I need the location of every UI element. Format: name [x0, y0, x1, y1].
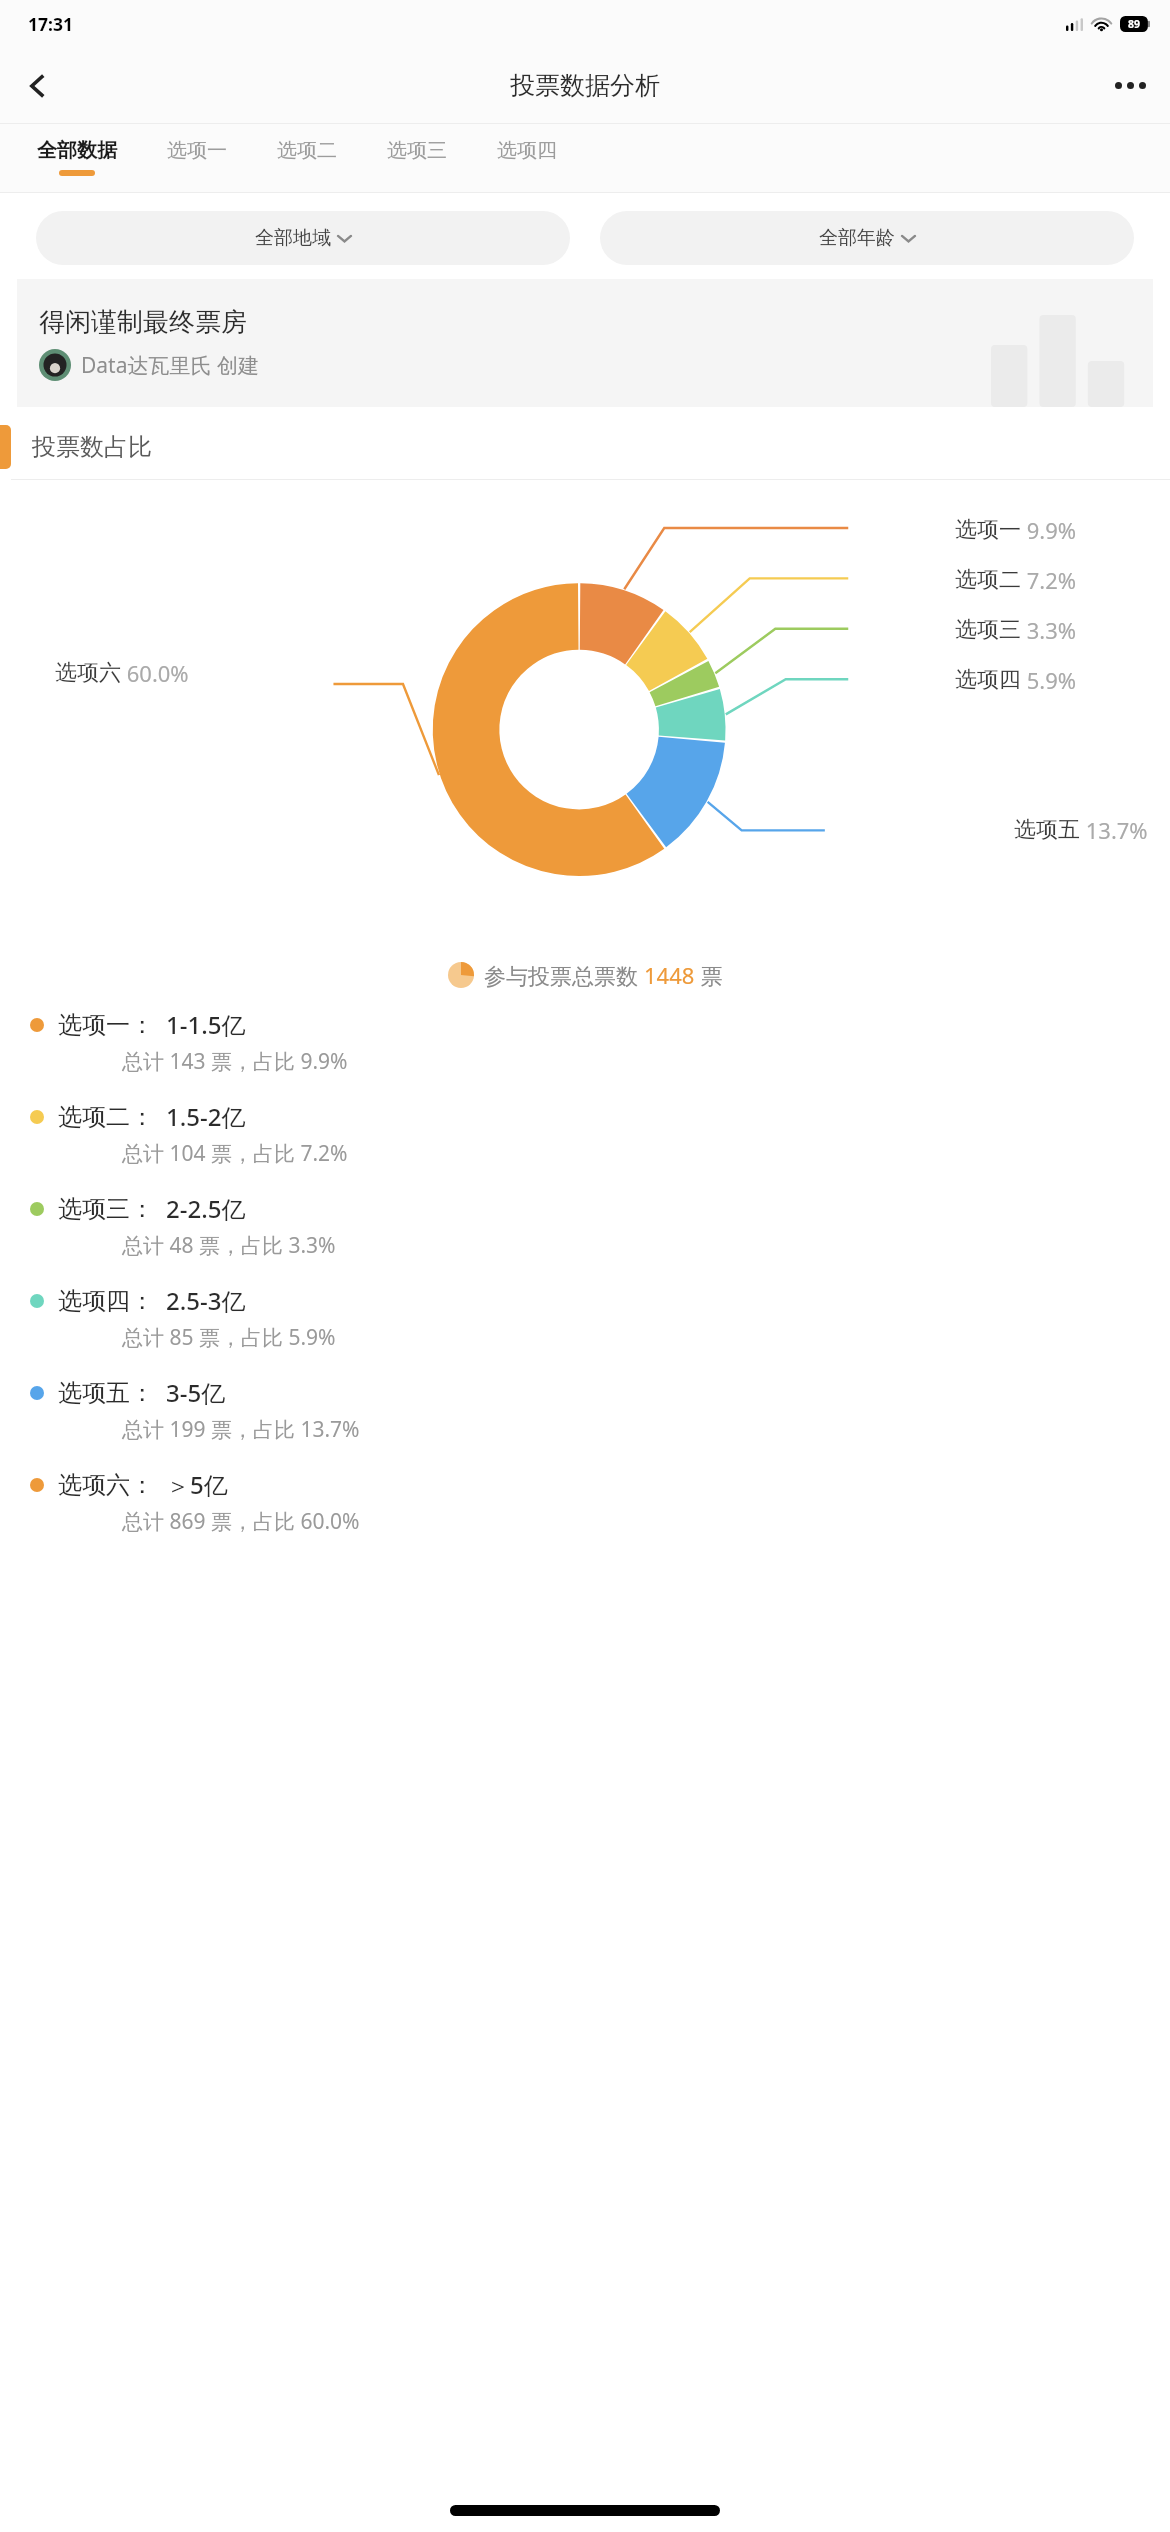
staticText: 投票数据分析 — [510, 70, 660, 101]
staticText: 选项三 — [387, 138, 447, 163]
staticText: 得闲谨制最终票房 — [39, 306, 247, 339]
staticText: 参与投票总票数 — [484, 960, 644, 990]
staticText: 总计 869 票，占比 60.0% — [122, 1507, 360, 1536]
staticText: 票 — [695, 960, 723, 990]
staticText: 1.5-2亿 — [166, 1100, 246, 1133]
staticText: ＞5亿 — [166, 1468, 228, 1501]
staticText: 选项一 — [167, 138, 227, 163]
staticText: 1448 — [644, 960, 695, 990]
button[interactable]: 选项三： — [0, 1192, 1170, 1260]
staticText: 选项一： — [58, 1010, 154, 1040]
button[interactable]: 选项四： — [0, 1284, 1170, 1352]
staticText: 选项二 — [955, 566, 1021, 594]
staticText: 总计 48 票，占比 3.3% — [122, 1231, 336, 1260]
staticText: 总计 199 票，占比 13.7% — [122, 1415, 360, 1444]
staticText: 1-1.5亿 — [166, 1008, 246, 1041]
staticText: 全部数据 — [37, 138, 117, 163]
staticText: 总计 143 票，占比 9.9% — [122, 1047, 348, 1076]
staticText: 全部地域 — [255, 226, 331, 250]
staticText: 投票数占比 — [32, 432, 152, 462]
staticText: 选项三： — [58, 1194, 154, 1224]
staticText: 13.7% — [1080, 815, 1148, 845]
staticText: 3.3% — [1021, 615, 1077, 645]
staticText: 89 — [1128, 17, 1141, 31]
button[interactable]: 得闲谨制最终票房 — [17, 279, 1153, 407]
staticText: 选项四 — [955, 666, 1021, 694]
staticText: 选项四 — [497, 138, 557, 163]
button[interactable]: 选项一 — [152, 124, 242, 192]
staticText: 全部年龄 — [819, 226, 895, 250]
staticText: 9.9% — [1021, 515, 1077, 545]
button[interactable]: 全部年龄 — [600, 211, 1134, 265]
button[interactable]: 选项二： — [0, 1100, 1170, 1168]
button[interactable]: 选项三 — [372, 124, 462, 192]
button[interactable]: 选项二 — [262, 124, 352, 192]
staticText: 选项六： — [58, 1470, 154, 1500]
button[interactable]: 全部数据 — [22, 124, 132, 192]
staticText: 选项四： — [58, 1286, 154, 1316]
staticText: 选项五： — [58, 1378, 154, 1408]
staticText: 选项二： — [58, 1102, 154, 1132]
button[interactable]: 选项一： — [0, 1008, 1170, 1076]
staticText: 总计 104 票，占比 7.2% — [122, 1139, 348, 1168]
staticText: 2.5-3亿 — [166, 1284, 246, 1317]
staticText: 2-2.5亿 — [166, 1192, 246, 1225]
button[interactable]: 选项四 — [482, 124, 572, 192]
staticText: 选项五 — [1014, 816, 1080, 844]
staticText: 5.9% — [1021, 665, 1077, 695]
staticText: 17:31 — [28, 12, 73, 36]
staticText: Data达瓦里氏 创建 — [81, 351, 259, 380]
staticText: 选项六 — [55, 659, 121, 687]
button[interactable]: More options — [1090, 48, 1170, 123]
staticText: 60.0% — [121, 658, 189, 688]
button[interactable]: 选项六： — [0, 1468, 1170, 1536]
button[interactable]: 全部地域 — [36, 211, 570, 265]
staticText: 总计 85 票，占比 5.9% — [122, 1323, 336, 1352]
staticText: 3-5亿 — [166, 1376, 226, 1409]
staticText: 选项三 — [955, 616, 1021, 644]
staticText: 7.2% — [1021, 565, 1077, 595]
button[interactable]: Back — [0, 48, 76, 123]
staticText: 选项二 — [277, 138, 337, 163]
button[interactable]: 选项五： — [0, 1376, 1170, 1444]
staticText: 选项一 — [955, 516, 1021, 544]
